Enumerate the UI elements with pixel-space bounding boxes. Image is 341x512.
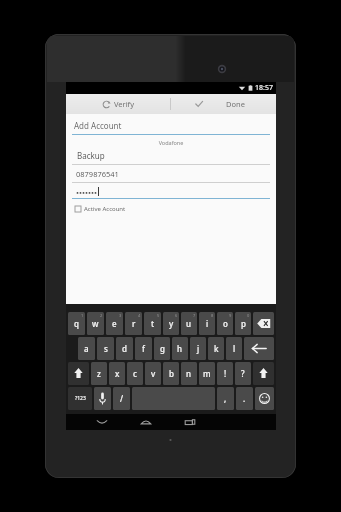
- staticText: y: [169, 318, 174, 329]
- staticText: Active Account: [84, 205, 126, 213]
- button[interactable]: w: [87, 312, 104, 335]
- staticText: q: [74, 318, 79, 329]
- staticText: p: [241, 318, 246, 329]
- button[interactable]: Recent apps: [180, 414, 200, 430]
- button[interactable]: /: [113, 387, 130, 410]
- button[interactable]: ?: [235, 362, 251, 385]
- button[interactable]: Shift: [68, 362, 89, 385]
- button[interactable]: .: [236, 387, 253, 410]
- staticText: d: [122, 343, 127, 354]
- button[interactable]: Emoji: [255, 387, 274, 410]
- staticText: b: [169, 368, 174, 379]
- button[interactable]: x: [109, 362, 125, 385]
- staticText: j: [197, 343, 200, 354]
- button[interactable]: Home: [136, 414, 156, 430]
- staticText: 5: [157, 313, 160, 318]
- staticText: i: [206, 318, 209, 329]
- button[interactable]: Done: [171, 94, 276, 114]
- staticText: 2: [100, 313, 103, 318]
- button[interactable]: ,: [217, 387, 234, 410]
- button[interactable]: v: [145, 362, 161, 385]
- staticText: Vodafone: [72, 139, 270, 146]
- button[interactable]: g: [154, 337, 170, 360]
- button[interactable]: l: [226, 337, 242, 360]
- button[interactable]: p: [235, 312, 251, 335]
- button[interactable]: z: [91, 362, 107, 385]
- staticText: Done: [226, 99, 245, 109]
- button[interactable]: Voice input: [94, 387, 111, 410]
- staticText: 6: [175, 313, 178, 318]
- staticText: 7: [193, 313, 196, 318]
- button[interactable]: k: [208, 337, 224, 360]
- staticText: s: [104, 343, 108, 354]
- button[interactable]: y: [163, 312, 179, 335]
- staticText: 3: [119, 313, 122, 318]
- button[interactable]: Backspace: [253, 312, 274, 335]
- staticText: a: [84, 343, 89, 354]
- button[interactable]: Active Account: [72, 204, 129, 214]
- staticText: r: [132, 318, 136, 329]
- staticText: 0: [247, 313, 250, 318]
- staticText: o: [223, 318, 228, 329]
- button[interactable]: c: [127, 362, 143, 385]
- button[interactable]: q: [68, 312, 85, 335]
- button[interactable]: o: [217, 312, 233, 335]
- staticText: Add Account: [74, 120, 122, 131]
- staticText: .: [243, 393, 246, 404]
- staticText: 18:57: [255, 83, 273, 93]
- staticText: l: [233, 343, 236, 354]
- staticText: ,: [224, 393, 227, 404]
- staticText: m: [203, 368, 211, 379]
- staticText: 0879876541: [76, 169, 119, 179]
- button[interactable]: a: [78, 337, 95, 360]
- button[interactable]: d: [116, 337, 133, 360]
- staticText: c: [133, 368, 137, 379]
- button[interactable]: Backup: [72, 150, 270, 165]
- staticText: e: [112, 318, 117, 329]
- staticText: z: [97, 368, 101, 379]
- button[interactable]: e: [106, 312, 123, 335]
- button[interactable]: j: [190, 337, 206, 360]
- staticText: 1: [81, 313, 84, 318]
- staticText: 4: [138, 313, 141, 318]
- staticText: w: [92, 318, 99, 329]
- button[interactable]: Shift: [253, 362, 274, 385]
- staticText: k: [214, 343, 219, 354]
- staticText: ?: [241, 368, 245, 379]
- button[interactable]: i: [199, 312, 215, 335]
- staticText: Backup: [77, 150, 105, 161]
- button[interactable]: 0879876541: [72, 169, 270, 183]
- button[interactable]: Back: [92, 414, 112, 430]
- staticText: Verify: [114, 99, 135, 109]
- staticText: 8: [211, 313, 214, 318]
- staticText: /: [120, 393, 124, 404]
- button[interactable]: u: [181, 312, 197, 335]
- staticText: t: [151, 318, 155, 329]
- staticText: n: [186, 368, 192, 379]
- button[interactable]: ?123: [68, 387, 92, 410]
- button[interactable]: [72, 187, 270, 199]
- button[interactable]: r: [125, 312, 142, 335]
- staticText: f: [142, 343, 145, 354]
- button[interactable]: Verify: [66, 94, 170, 114]
- button[interactable]: s: [97, 337, 114, 360]
- button[interactable]: h: [172, 337, 188, 360]
- staticText: u: [186, 318, 192, 329]
- staticText: !: [224, 368, 227, 379]
- button[interactable]: m: [199, 362, 215, 385]
- button[interactable]: !: [217, 362, 233, 385]
- button[interactable]: t: [144, 312, 161, 335]
- button[interactable]: Enter: [244, 337, 274, 360]
- button[interactable]: b: [163, 362, 179, 385]
- staticText: ?123: [75, 395, 86, 402]
- staticText: x: [115, 368, 120, 379]
- staticText: v: [151, 368, 156, 379]
- staticText: 9: [229, 313, 232, 318]
- button[interactable]: n: [181, 362, 197, 385]
- button[interactable]: f: [135, 337, 152, 360]
- staticText: g: [160, 343, 165, 354]
- staticText: h: [177, 343, 183, 354]
